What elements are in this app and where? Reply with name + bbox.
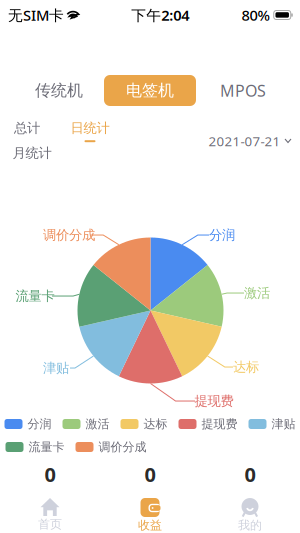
staticText: 津贴 [43, 360, 69, 376]
staticText: 激活数 [132, 490, 168, 505]
staticText: 日统计 [70, 120, 109, 136]
staticText: 津贴 [271, 417, 295, 431]
staticText: 提现费 [201, 417, 237, 431]
button[interactable]: 我的 [200, 491, 300, 533]
staticText: 调价分成 [98, 440, 146, 454]
button[interactable]: 日统计 [69, 118, 111, 144]
button[interactable]: 传统机 [13, 75, 105, 106]
staticText: 收益 [138, 518, 162, 533]
staticText: MPOS [220, 80, 266, 101]
button[interactable]: 电签机 [104, 75, 196, 106]
staticText: 0 [144, 461, 155, 487]
staticText: 流量卡 [28, 440, 64, 454]
staticText: 0 [244, 461, 255, 487]
staticText: 80% [241, 5, 269, 25]
staticText: 激活 [85, 417, 109, 431]
staticText: 分润 [27, 417, 51, 431]
staticText: 达标 [233, 359, 259, 375]
staticText: 传统机 [35, 81, 83, 100]
staticText: 流量卡 [15, 288, 54, 304]
staticText: 0 [44, 461, 55, 487]
staticText: 首页 [38, 517, 62, 532]
staticText: 总计 [14, 120, 40, 136]
staticText: 调价分成 [43, 227, 95, 243]
staticText: 我的 [238, 518, 262, 533]
staticText: 达标 [143, 417, 167, 431]
staticText: 提现费 [194, 393, 233, 409]
staticText: 达标数 [232, 490, 268, 505]
button[interactable]: 收益 [100, 491, 200, 533]
button[interactable]: 月统计 [11, 145, 53, 161]
staticText: 激活 [244, 285, 270, 301]
button[interactable]: 总计 [12, 120, 42, 136]
staticText: 月统计 [12, 145, 51, 161]
staticText: 无SIM卡 [8, 5, 64, 25]
staticText: 2021-07-21 [208, 132, 280, 150]
button[interactable]: MPOS [197, 75, 289, 106]
button[interactable]: 首页 [0, 491, 100, 533]
staticText: 分润 [209, 227, 235, 243]
staticText: 入网数 [32, 490, 68, 505]
staticText: 下午2:04 [131, 5, 189, 25]
staticText: 电签机 [126, 81, 174, 100]
button[interactable]: 2021-07-21 [208, 132, 291, 150]
